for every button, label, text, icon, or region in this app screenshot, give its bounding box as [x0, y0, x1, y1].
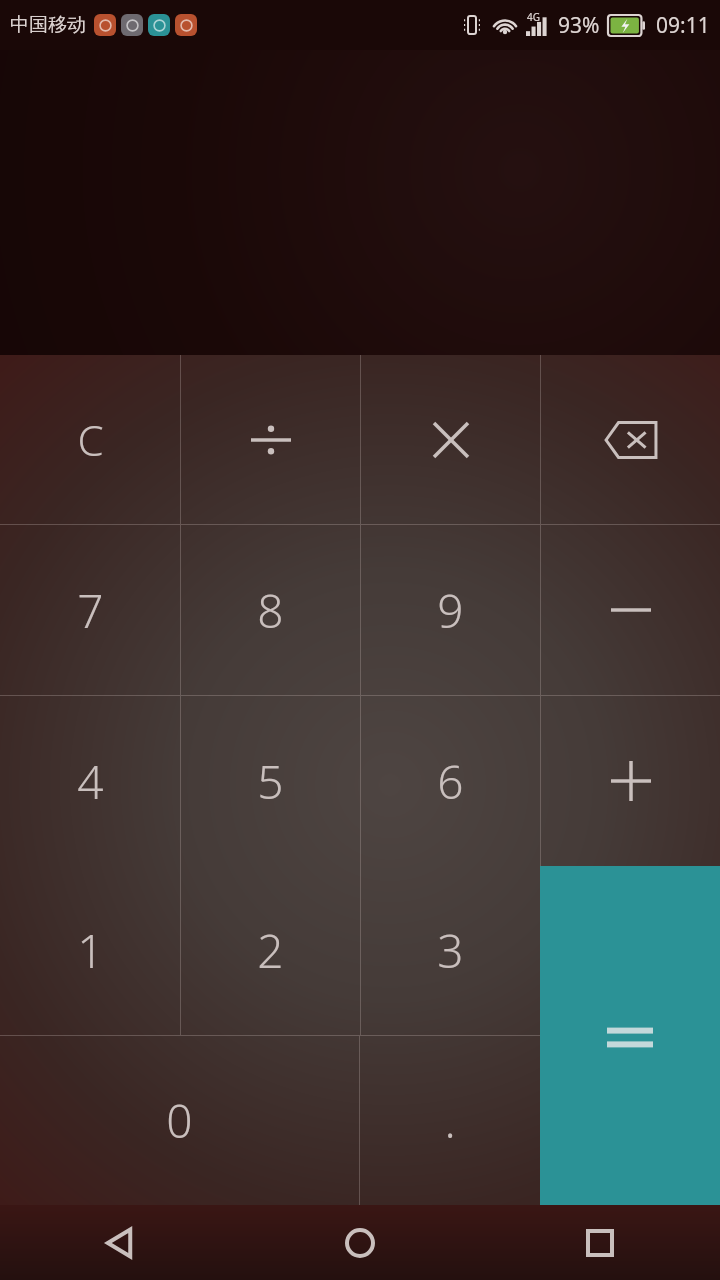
button[interactable]: Plus [541, 696, 720, 866]
staticText: 4G [527, 10, 540, 24]
button[interactable]: Multiply [361, 355, 540, 524]
staticText: C [77, 411, 104, 468]
button[interactable]: 6 [361, 696, 540, 866]
button[interactable]: Back [0, 1205, 240, 1280]
button[interactable] [540, 866, 720, 1205]
staticText: 4 [77, 750, 104, 813]
button[interactable]: 0 [0, 1036, 359, 1205]
button[interactable]: 7 [0, 525, 180, 695]
staticText: 9 [437, 579, 464, 642]
staticText: 中国移动 [10, 13, 86, 37]
button[interactable]: 8 [181, 525, 360, 695]
staticText: 93% [558, 11, 600, 40]
button[interactable]: 1 [0, 866, 180, 1035]
button[interactable]: Home [240, 1205, 480, 1280]
button[interactable]: Divide [181, 355, 360, 524]
button[interactable]: 4 [0, 696, 180, 866]
button[interactable]: . [360, 1036, 540, 1205]
staticText: . [444, 1089, 456, 1152]
staticText: 09:11 [656, 11, 710, 40]
button[interactable]: 5 [181, 696, 360, 866]
staticText: 1 [77, 919, 104, 982]
button[interactable]: C [0, 355, 180, 524]
staticText: 7 [77, 579, 104, 642]
button[interactable]: Recents [480, 1205, 720, 1280]
button[interactable]: Backspace [541, 355, 720, 524]
button[interactable]: 9 [361, 525, 540, 695]
staticText: 3 [437, 919, 464, 982]
staticText: 5 [257, 750, 284, 813]
staticText: 2 [257, 919, 284, 982]
staticText: 0 [166, 1089, 193, 1152]
button[interactable]: 2 [181, 866, 360, 1035]
button[interactable]: 3 [361, 866, 540, 1035]
staticText: 6 [437, 750, 464, 813]
button[interactable]: Minus [541, 525, 720, 695]
staticText: 8 [257, 579, 284, 642]
